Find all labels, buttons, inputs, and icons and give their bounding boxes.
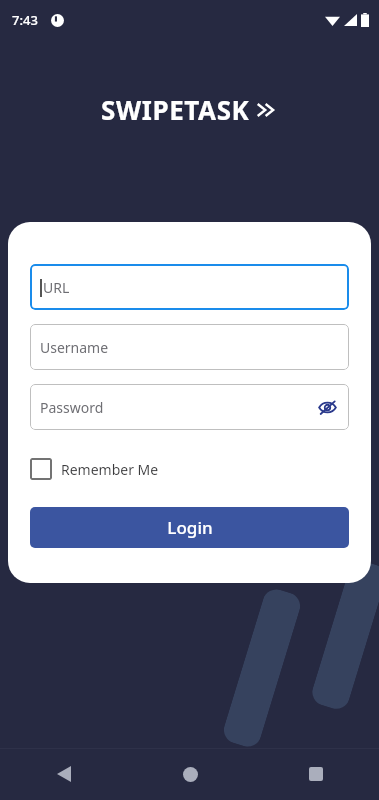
button[interactable]: Show password [309,389,345,425]
staticText: Remember Me [61,460,159,479]
button[interactable]: Back [0,748,127,800]
staticText: SWIPETASK [101,92,250,127]
staticText: Username [40,338,109,357]
staticText: Password [40,398,104,417]
button[interactable]: URL [30,264,349,310]
button[interactable]: Recent apps [253,748,379,800]
button[interactable]: Password [30,384,349,430]
staticText: Login [167,516,213,539]
staticText: 7:43 [12,11,38,29]
staticText: URL [43,278,70,297]
button[interactable]: Home [127,748,253,800]
button[interactable]: Remember Me [30,456,159,482]
button[interactable]: Username [30,324,349,370]
button[interactable]: Login [30,507,349,548]
